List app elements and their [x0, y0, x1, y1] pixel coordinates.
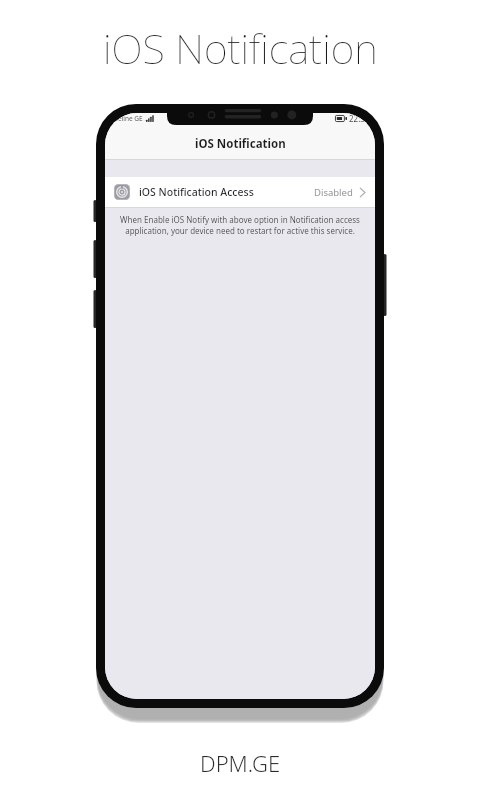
staticText: Disabled — [314, 186, 353, 199]
staticText: iOS Notification — [103, 20, 378, 76]
other: iOS Notification Access icon — [114, 184, 130, 200]
staticText: DPM.GE — [200, 748, 281, 778]
staticText: When Enable iOS Notify with above option… — [113, 214, 367, 236]
staticText: 22:38 — [349, 113, 370, 124]
button[interactable]: iOS Notification Access icon — [105, 177, 375, 207]
staticText: iOS Notification — [195, 136, 286, 152]
other: Open — [359, 186, 366, 199]
staticText: iOS Notification Access — [139, 185, 254, 199]
staticText: Beeline GE — [110, 114, 143, 123]
